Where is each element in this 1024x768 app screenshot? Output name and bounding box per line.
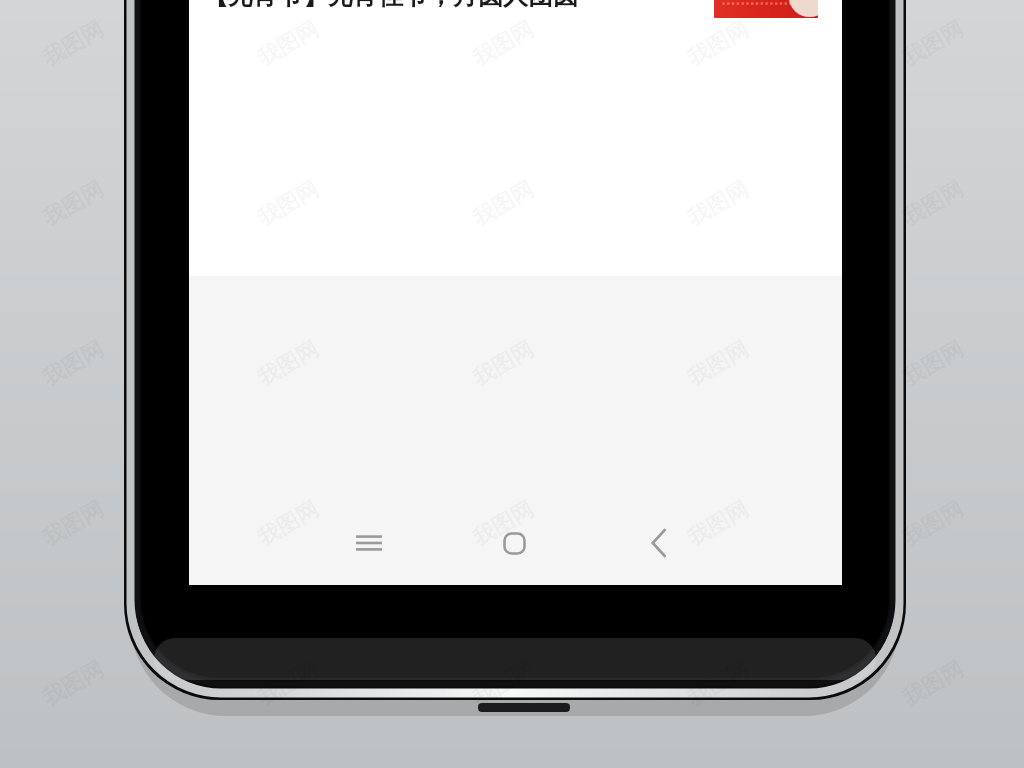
staticText: 我图网 — [897, 175, 969, 233]
button[interactable]: 【元宵节】元宵佳节，月圆人团圆 — [189, 0, 842, 18]
button[interactable]: Home — [482, 511, 546, 575]
staticText: 我图网 — [682, 655, 754, 713]
staticText: 我图网 — [467, 655, 539, 713]
staticText: 我图网 — [252, 655, 324, 713]
button[interactable]: Back — [627, 511, 691, 575]
staticText: 我图网 — [467, 495, 539, 553]
staticText: 我图网 — [897, 15, 969, 73]
staticText: 我图网 — [897, 495, 969, 553]
staticText: 【元宵节】元宵佳节，月圆人团圆 — [203, 0, 706, 11]
staticText: 我图网 — [897, 335, 969, 393]
button[interactable]: Menu — [337, 511, 401, 575]
staticText: 我图网 — [682, 15, 754, 73]
